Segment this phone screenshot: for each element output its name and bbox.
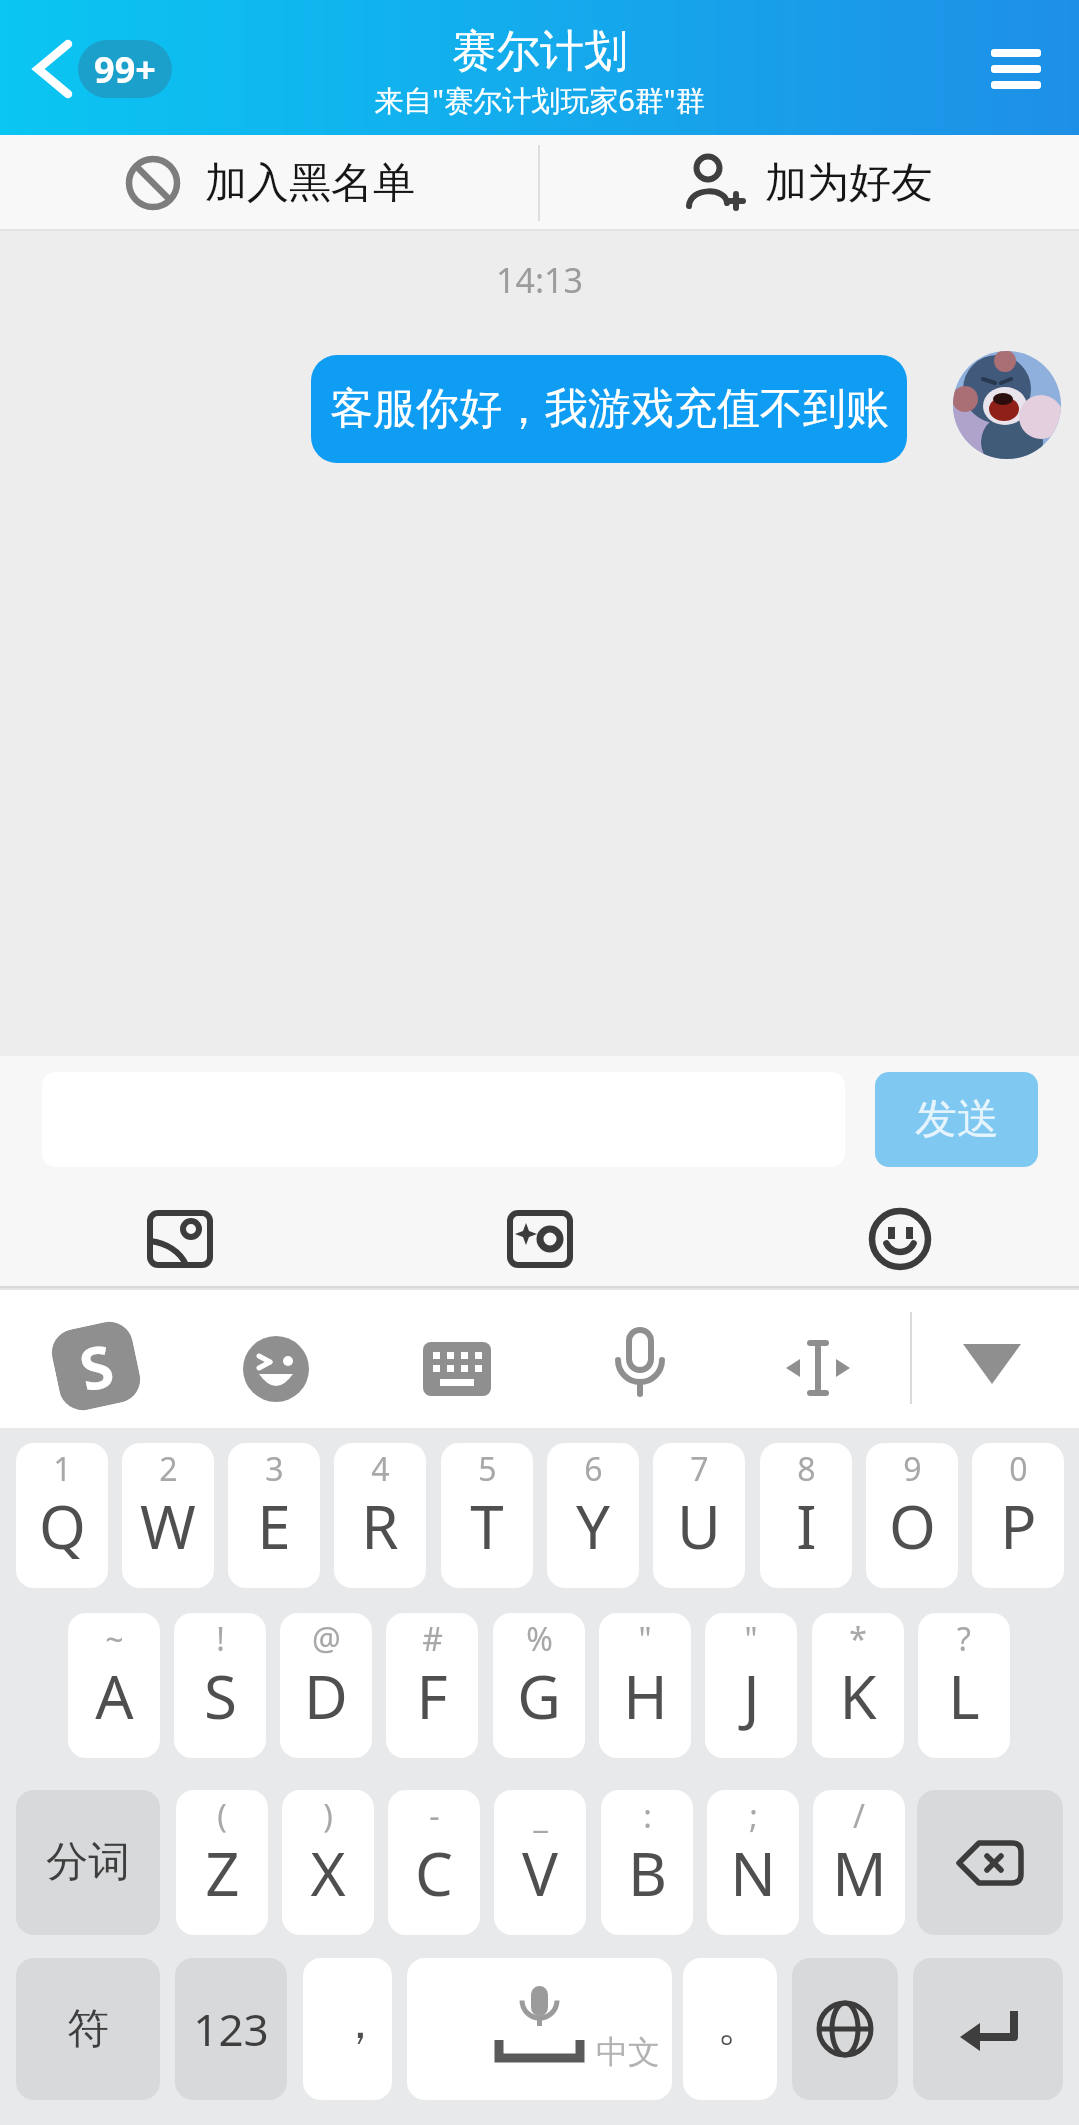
- staticText: 客服你好，我游戏充值不到账: [330, 382, 889, 436]
- button[interactable]: 发送: [875, 1072, 1038, 1167]
- button[interactable]: [780, 1340, 856, 1396]
- staticText: 6: [584, 1447, 603, 1491]
- staticText: Z: [205, 1832, 240, 1914]
- button[interactable]: *: [812, 1613, 904, 1758]
- staticText: L: [948, 1655, 980, 1737]
- button[interactable]: [868, 1207, 932, 1271]
- button[interactable]: 8: [760, 1443, 852, 1588]
- staticText: O: [889, 1485, 936, 1567]
- button[interactable]: [243, 1336, 309, 1402]
- button[interactable]: 2: [122, 1443, 214, 1588]
- staticText: U: [677, 1485, 721, 1567]
- staticText: S: [204, 1655, 237, 1737]
- button[interactable]: 客服你好，我游戏充值不到账: [311, 355, 907, 463]
- staticText: X: [310, 1832, 346, 1914]
- button[interactable]: ": [599, 1613, 691, 1758]
- button[interactable]: 99+: [78, 40, 172, 98]
- staticText: J: [743, 1655, 760, 1737]
- button[interactable]: 3: [228, 1443, 320, 1588]
- staticText: :: [643, 1794, 652, 1838]
- staticText: 0: [1009, 1447, 1028, 1491]
- button[interactable]: [24, 38, 80, 100]
- button[interactable]: (: [176, 1790, 268, 1935]
- staticText: !: [216, 1617, 225, 1661]
- staticText: W: [140, 1485, 196, 1567]
- button[interactable]: [991, 49, 1041, 89]
- button[interactable]: [953, 351, 1061, 459]
- staticText: Q: [39, 1485, 86, 1567]
- button[interactable]: [917, 1790, 1063, 1935]
- staticText: V: [522, 1832, 558, 1914]
- staticText: 加为好友: [765, 157, 933, 210]
- staticText: ": [638, 1617, 652, 1661]
- staticText: P: [1000, 1485, 1037, 1567]
- staticText: K: [839, 1655, 877, 1737]
- button[interactable]: 分词: [16, 1790, 160, 1935]
- staticText: ): [323, 1794, 333, 1838]
- button[interactable]: %: [493, 1613, 585, 1758]
- button[interactable]: ": [705, 1613, 797, 1758]
- button[interactable]: :: [601, 1790, 693, 1935]
- staticText: 14:13: [496, 257, 583, 303]
- button[interactable]: 加为好友: [539, 135, 1079, 231]
- staticText: 分词: [46, 1836, 130, 1889]
- staticText: 99+: [94, 45, 156, 94]
- button[interactable]: 4: [334, 1443, 426, 1588]
- staticText: N: [730, 1832, 776, 1914]
- staticText: 赛尔计划: [452, 24, 628, 79]
- button[interactable]: @: [280, 1613, 372, 1758]
- staticText: 9: [903, 1447, 922, 1491]
- button[interactable]: ，: [303, 1958, 392, 2100]
- button[interactable]: [913, 1958, 1063, 2100]
- staticText: M: [832, 1832, 887, 1914]
- button[interactable]: !: [174, 1613, 266, 1758]
- staticText: ": [744, 1617, 758, 1661]
- button[interactable]: 0: [972, 1443, 1064, 1588]
- button[interactable]: #: [386, 1613, 478, 1758]
- staticText: C: [415, 1832, 453, 1914]
- button[interactable]: [148, 1207, 212, 1271]
- staticText: ;: [749, 1794, 758, 1838]
- button[interactable]: [508, 1207, 572, 1271]
- button[interactable]: [957, 1340, 1027, 1386]
- staticText: 发送: [915, 1093, 999, 1146]
- staticText: 4: [371, 1447, 390, 1491]
- staticText: S: [72, 1324, 120, 1408]
- button[interactable]: 中文: [407, 1958, 672, 2100]
- button[interactable]: 。: [683, 1958, 777, 2100]
- button[interactable]: S: [47, 1317, 145, 1415]
- button[interactable]: [423, 1342, 491, 1396]
- button[interactable]: -: [388, 1790, 480, 1935]
- button[interactable]: 7: [653, 1443, 745, 1588]
- button[interactable]: ?: [918, 1613, 1010, 1758]
- staticText: I: [796, 1485, 817, 1567]
- staticText: (: [217, 1794, 227, 1838]
- button[interactable]: [612, 1328, 668, 1400]
- staticText: /: [853, 1794, 865, 1838]
- staticText: R: [361, 1485, 399, 1567]
- button[interactable]: 6: [547, 1443, 639, 1588]
- button[interactable]: [792, 1958, 898, 2100]
- staticText: 中文: [596, 2032, 660, 2072]
- staticText: ?: [957, 1617, 971, 1661]
- button[interactable]: 1: [16, 1443, 108, 1588]
- staticText: -: [429, 1794, 440, 1838]
- button[interactable]: ;: [707, 1790, 799, 1935]
- staticText: E: [257, 1485, 291, 1567]
- button[interactable]: 123: [175, 1958, 287, 2100]
- staticText: 来自"赛尔计划玩家6群"群: [374, 80, 705, 120]
- staticText: T: [470, 1485, 504, 1567]
- staticText: 7: [690, 1447, 709, 1491]
- button[interactable]: 9: [866, 1443, 958, 1588]
- staticText: A: [95, 1655, 134, 1737]
- button[interactable]: ): [282, 1790, 374, 1935]
- button[interactable]: 加入黑名单: [0, 135, 539, 231]
- button[interactable]: 符: [16, 1958, 160, 2100]
- staticText: F: [416, 1655, 448, 1737]
- staticText: D: [304, 1655, 348, 1737]
- button[interactable]: _: [494, 1790, 586, 1935]
- button[interactable]: /: [813, 1790, 905, 1935]
- button[interactable]: ~: [68, 1613, 160, 1758]
- button[interactable]: 5: [441, 1443, 533, 1588]
